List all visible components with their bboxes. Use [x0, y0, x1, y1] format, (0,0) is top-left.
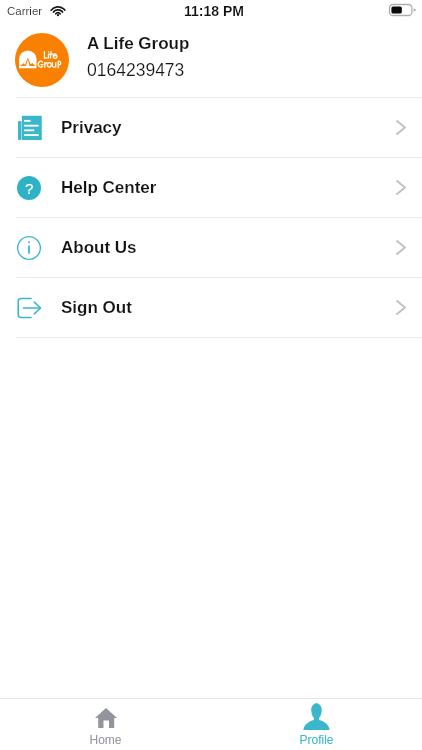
staticText: Sign Out: [61, 298, 132, 317]
button[interactable]: About Us: [0, 218, 422, 277]
button[interactable]: Privacy: [0, 98, 422, 157]
button[interactable]: Sign Out: [0, 278, 422, 337]
button[interactable]: Home: [0, 698, 211, 750]
staticText: ?: [25, 180, 34, 197]
button[interactable]: Profile: [211, 698, 422, 750]
button[interactable]: ?: [0, 158, 422, 217]
staticText: 11:18 PM: [184, 3, 244, 19]
staticText: Help Center: [61, 178, 157, 197]
staticText: Profile: [299, 733, 334, 746]
staticText: 0164239473: [87, 60, 185, 80]
staticText: Carrier: [7, 5, 43, 18]
staticText: Privacy: [61, 118, 122, 137]
staticText: About Us: [61, 238, 137, 257]
staticText: A Life Group: [87, 34, 190, 53]
staticText: Home: [89, 733, 122, 746]
